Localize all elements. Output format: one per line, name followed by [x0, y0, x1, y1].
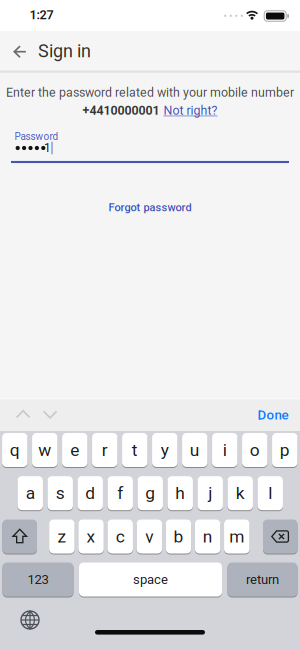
staticText: l [268, 483, 272, 503]
button[interactable]: k [227, 475, 253, 511]
staticText: return [246, 572, 279, 587]
button[interactable]: f [107, 475, 133, 511]
button[interactable]: space [79, 561, 222, 597]
button[interactable]: n [195, 518, 220, 554]
button[interactable]: o [242, 432, 268, 468]
button[interactable]: u [182, 432, 208, 468]
button[interactable] [263, 518, 297, 554]
staticText: j [208, 483, 212, 503]
button[interactable]: j [197, 475, 223, 511]
button[interactable]: h [167, 475, 193, 511]
staticText: 1:27 [29, 8, 53, 22]
staticText: z [57, 526, 66, 547]
staticText: p [280, 440, 290, 460]
button[interactable]: m [224, 518, 249, 554]
button[interactable] [2, 518, 37, 554]
button[interactable]: Done [251, 401, 294, 429]
staticText: f [117, 483, 123, 503]
staticText: k [236, 483, 245, 503]
button[interactable] [38, 406, 62, 422]
button[interactable]: c [107, 518, 133, 554]
button[interactable]: e [62, 432, 87, 468]
staticText: i [223, 440, 227, 460]
button[interactable]: g [137, 475, 163, 511]
button[interactable]: return [227, 561, 297, 597]
staticText: t [132, 440, 138, 460]
staticText: Enter the password related with your mob… [6, 85, 294, 100]
staticText: d [85, 483, 95, 503]
staticText: o [250, 440, 260, 460]
staticText: Not right? [163, 103, 217, 118]
staticText: y [161, 440, 169, 460]
button[interactable]: a [17, 475, 43, 511]
staticText: b [173, 526, 183, 547]
staticText: h [175, 483, 185, 503]
staticText: r [102, 440, 108, 460]
button[interactable]: 123 [2, 561, 73, 597]
staticText: a [26, 483, 35, 503]
button[interactable]: Not right? [163, 103, 217, 118]
button[interactable]: b [166, 518, 191, 554]
button[interactable]: v [137, 518, 162, 554]
button[interactable] [17, 607, 43, 633]
button[interactable] [6, 38, 34, 66]
button[interactable]: r [92, 432, 117, 468]
staticText: 1 [44, 141, 51, 155]
staticText: n [203, 526, 213, 547]
button[interactable]: y [152, 432, 178, 468]
staticText: Done [257, 407, 288, 423]
staticText: v [145, 526, 153, 547]
staticText: Forgot password [108, 201, 191, 214]
button[interactable]: p [272, 432, 298, 468]
button[interactable]: Forgot password [98, 195, 201, 220]
button[interactable]: t [122, 432, 148, 468]
staticText: Sign in [38, 40, 91, 62]
button[interactable]: x [78, 518, 104, 554]
button[interactable] [11, 406, 35, 422]
staticText: Password [14, 131, 58, 142]
staticText: m [229, 526, 244, 547]
button[interactable]: q [2, 432, 28, 468]
staticText: +4410000001 [82, 103, 159, 118]
button[interactable]: s [47, 475, 73, 511]
staticText: q [10, 440, 20, 460]
button[interactable]: l [257, 475, 283, 511]
staticText: space [133, 572, 168, 587]
button[interactable]: i [212, 432, 238, 468]
staticText: c [116, 526, 125, 547]
staticText: u [190, 440, 200, 460]
staticText: e [70, 440, 79, 460]
staticText: x [86, 526, 95, 547]
button[interactable]: w [32, 432, 57, 468]
staticText: 123 [27, 572, 48, 587]
button[interactable]: Password [11, 128, 289, 168]
staticText: s [56, 483, 65, 503]
button[interactable]: d [77, 475, 103, 511]
staticText: g [145, 483, 155, 503]
staticText: w [38, 440, 51, 460]
button[interactable]: z [49, 518, 75, 554]
